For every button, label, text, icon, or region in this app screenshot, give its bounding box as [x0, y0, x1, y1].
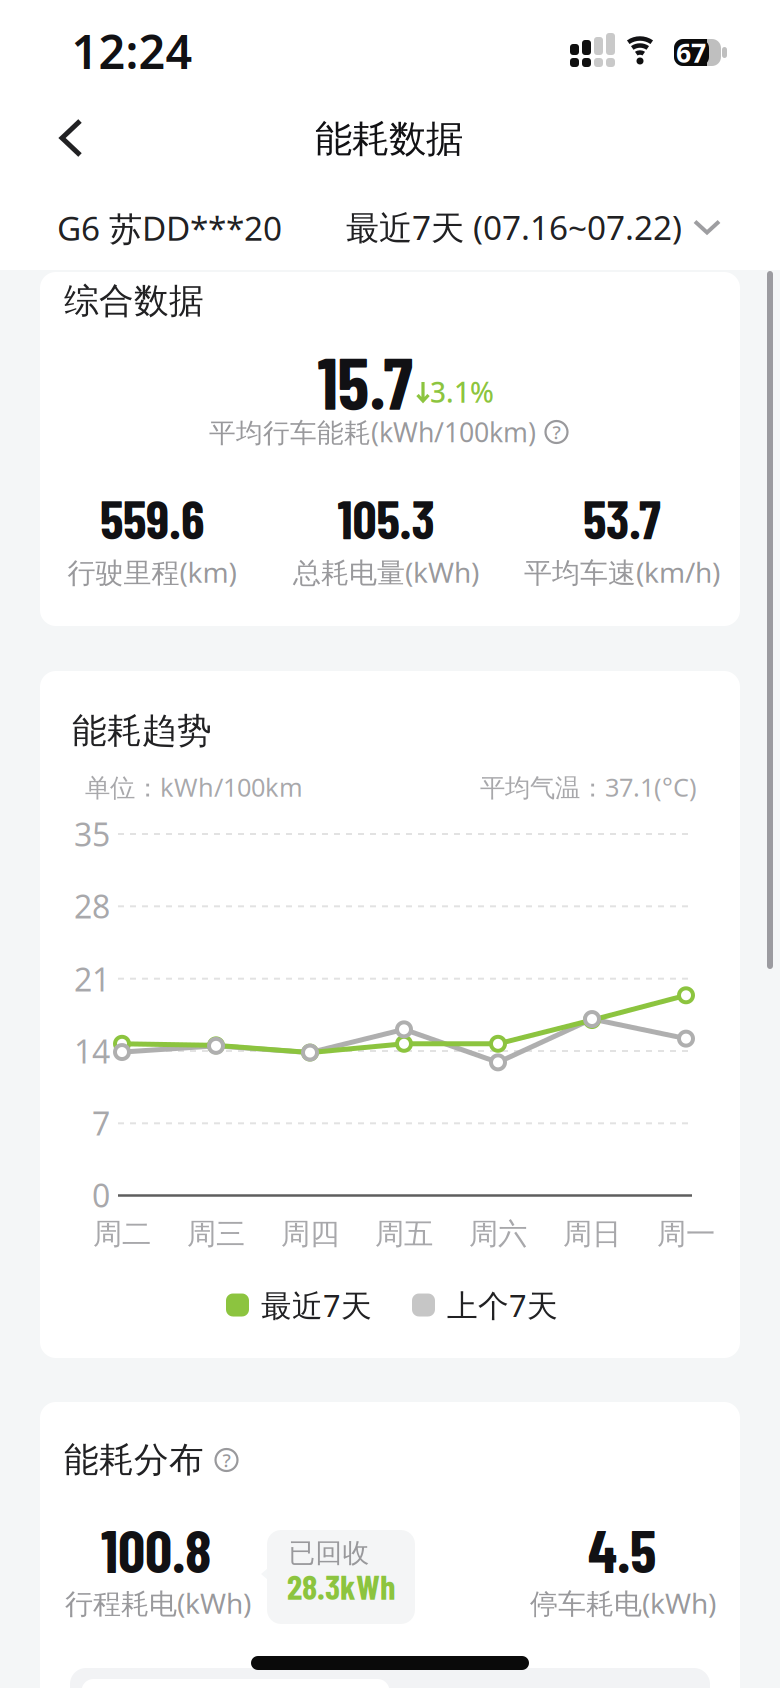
- staticText: 周四: [281, 1216, 339, 1252]
- staticText: 21: [74, 958, 110, 1000]
- staticText: 周一: [657, 1216, 715, 1252]
- staticText: 28: [74, 885, 110, 927]
- staticText: 53.7: [583, 486, 661, 550]
- staticText: 行驶里程(km): [67, 553, 236, 591]
- button[interactable]: Help: [214, 1447, 239, 1472]
- staticText: 559.6: [100, 486, 204, 550]
- staticText: 周日: [563, 1216, 621, 1252]
- staticText: 100.8: [101, 1513, 211, 1585]
- staticText: 最近7天 (07.16~07.22): [346, 205, 682, 249]
- staticText: 周二: [93, 1216, 151, 1252]
- staticText: 4.5: [588, 1513, 656, 1585]
- staticText: 周五: [375, 1216, 433, 1252]
- staticText: G6 苏DD***20: [57, 206, 282, 250]
- staticText: 105.3: [337, 486, 434, 550]
- staticText: 行程耗电(kWh): [65, 1584, 251, 1622]
- staticText: 35: [74, 813, 110, 855]
- button[interactable]: 最近7天 (07.16~07.22): [346, 205, 720, 249]
- staticText: 单位：kWh/100km: [85, 770, 303, 804]
- staticText: 能耗趋势: [72, 710, 212, 752]
- staticText: 12:24: [71, 20, 192, 82]
- staticText: 周六: [469, 1216, 527, 1252]
- staticText: 15.7: [317, 338, 412, 424]
- staticText: 最近7天: [261, 1285, 372, 1325]
- staticText: 7: [92, 1102, 110, 1144]
- button[interactable]: G6 苏DD***20: [57, 206, 282, 250]
- staticText: 3.1%: [430, 373, 494, 411]
- staticText: 已回收: [288, 1537, 369, 1569]
- staticText: 67: [676, 35, 706, 70]
- staticText: 平均行车能耗(kWh/100km): [209, 414, 536, 450]
- staticText: 能耗分布: [64, 1439, 204, 1481]
- staticText: 周三: [187, 1216, 245, 1252]
- button[interactable]: Back: [49, 116, 93, 160]
- staticText: 能耗数据: [315, 116, 463, 162]
- staticText: 14: [74, 1030, 110, 1072]
- staticText: 停车耗电(kWh): [530, 1584, 716, 1622]
- staticText: 0: [92, 1174, 110, 1216]
- button[interactable]: Help: [544, 419, 569, 444]
- staticText: 综合数据: [64, 280, 204, 322]
- staticText: 28.3kWh: [287, 1565, 395, 1607]
- staticText: 总耗电量(kWh): [293, 553, 479, 591]
- staticText: ?: [552, 420, 560, 444]
- staticText: ?: [222, 1448, 230, 1472]
- staticText: 上个7天: [447, 1285, 558, 1325]
- staticText: 平均车速(km/h): [524, 553, 720, 591]
- staticText: 平均气温：37.1(°C): [480, 770, 697, 804]
